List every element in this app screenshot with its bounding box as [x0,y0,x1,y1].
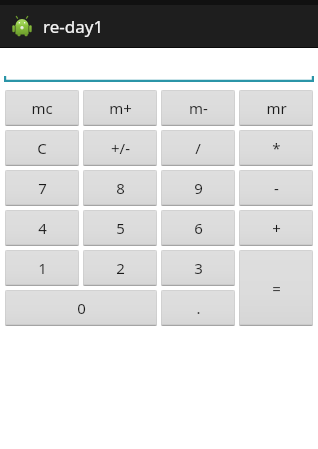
staticText: re-day1 [43,15,104,38]
button[interactable]: +/- [83,130,157,166]
staticText: 3 [194,258,203,278]
button[interactable]: 2 [83,250,157,286]
staticText: 6 [194,218,203,238]
button[interactable]: 5 [83,210,157,246]
button[interactable]: 0 [5,290,157,326]
staticText: * [272,138,281,158]
staticText: 4 [38,218,47,238]
staticText: mr [266,98,287,118]
button[interactable]: - [239,170,313,206]
staticText: m- [189,98,208,118]
button[interactable]: 7 [5,170,79,206]
staticText: + [272,218,281,238]
staticText: 0 [77,298,86,318]
button[interactable]: 3 [161,250,235,286]
staticText: mc [31,98,53,118]
button[interactable]: m- [161,90,235,126]
button[interactable]: mr [239,90,313,126]
staticText: m+ [109,98,132,118]
button[interactable]: . [161,290,235,326]
staticText: 2 [116,258,125,278]
staticText: / [195,138,201,158]
staticText: 8 [116,178,125,198]
staticText: 1 [38,258,47,278]
button[interactable]: 6 [161,210,235,246]
button[interactable]: m+ [83,90,157,126]
staticText: 9 [194,178,203,198]
button[interactable]: / [161,130,235,166]
staticText: - [274,178,279,198]
button[interactable]: 8 [83,170,157,206]
button[interactable]: C [5,130,79,166]
staticText: = [272,278,281,298]
button[interactable]: 9 [161,170,235,206]
staticText: C [37,138,47,158]
staticText: . [196,298,201,318]
staticText: 5 [116,218,125,238]
button[interactable]: 4 [5,210,79,246]
button[interactable]: * [239,130,313,166]
button[interactable] [4,72,314,82]
button[interactable]: = [239,250,313,326]
staticText: +/- [111,138,130,158]
staticText: 7 [38,178,47,198]
button[interactable]: 1 [5,250,79,286]
button[interactable]: mc [5,90,79,126]
button[interactable]: + [239,210,313,246]
